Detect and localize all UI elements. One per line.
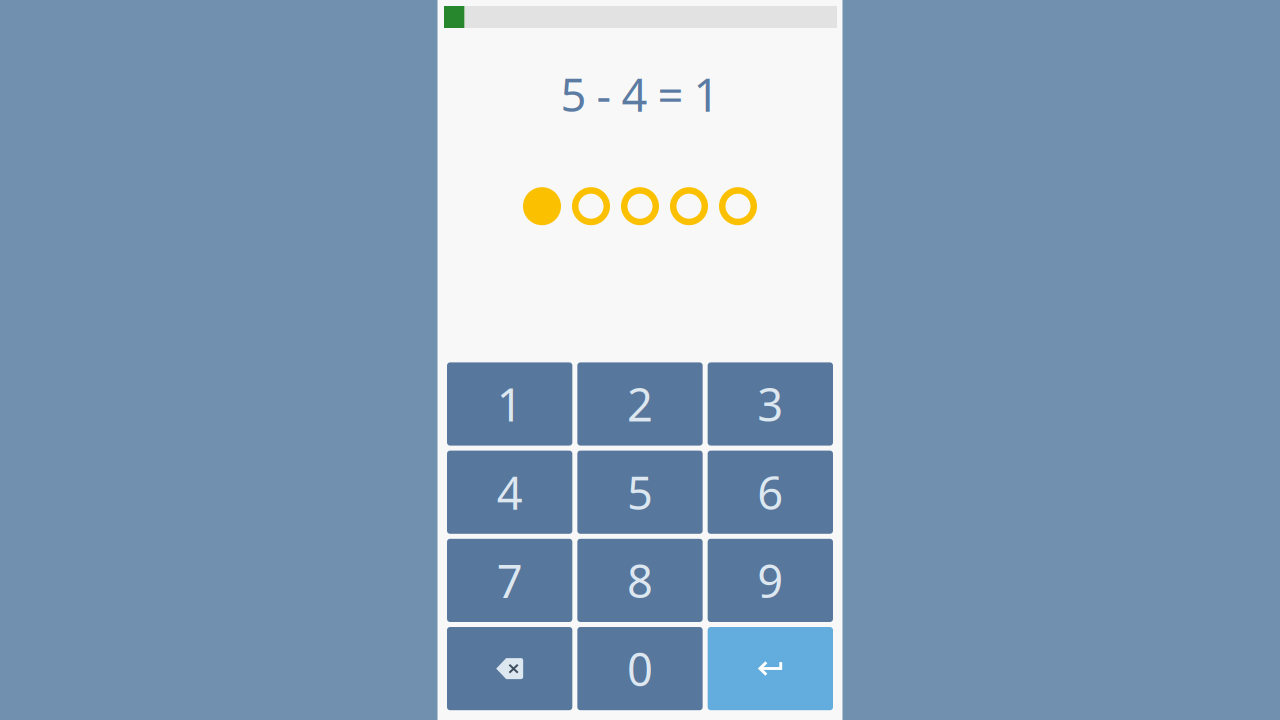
button[interactable]: 3 — [708, 362, 833, 446]
staticText: 5 — [627, 462, 653, 522]
staticText: 4 — [497, 462, 523, 522]
staticText: 5 - 4 = 1 — [560, 64, 719, 124]
button[interactable]: 8 — [577, 539, 703, 622]
button[interactable]: Delete — [447, 627, 572, 710]
staticText: 7 — [497, 550, 523, 610]
button[interactable]: 0 — [577, 627, 703, 710]
button[interactable]: 4 — [447, 451, 572, 534]
staticText: 8 — [627, 550, 653, 610]
staticText: 1 — [497, 374, 523, 434]
staticText: 0 — [627, 638, 653, 699]
staticText: 2 — [627, 374, 653, 434]
button[interactable]: 7 — [447, 539, 572, 622]
button[interactable]: 2 — [577, 362, 703, 446]
button[interactable]: Submit answer — [708, 627, 833, 710]
staticText: 9 — [757, 550, 783, 610]
button[interactable]: 6 — [708, 451, 833, 534]
button[interactable]: 1 — [447, 362, 572, 446]
button[interactable]: 5 — [577, 451, 703, 534]
staticText: 3 — [757, 374, 783, 434]
staticText: 6 — [757, 462, 783, 522]
button[interactable]: 9 — [708, 539, 833, 622]
